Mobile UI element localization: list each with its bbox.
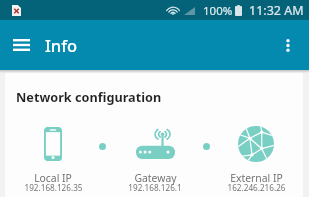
staticText: Info [45,34,78,56]
staticText: 100% [203,3,233,19]
staticText: Network configuration [16,88,162,105]
button[interactable]: Gateway [105,125,205,196]
staticText: 11:32 AM [249,2,304,19]
staticText: 192.168.126.35 [24,182,83,193]
staticText: 162.246.216.26 [227,182,286,193]
staticText: 192.168.126.1 [128,182,182,193]
button[interactable]: More options [270,27,306,63]
button[interactable]: Local IP [5,125,103,196]
staticText: Local IP [34,171,72,185]
staticText: External IP [230,171,283,185]
button[interactable]: External IP [206,125,303,196]
staticText: Gateway [134,171,177,185]
button[interactable]: Open navigation menu [3,27,39,63]
